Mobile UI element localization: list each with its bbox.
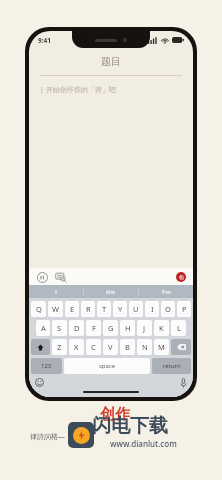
button[interactable]: A: [36, 320, 50, 336]
staticText: C: [91, 342, 96, 352]
button[interactable]: T: [97, 301, 111, 317]
button[interactable]: return: [152, 358, 191, 374]
staticText: 题目: [101, 55, 121, 68]
button[interactable]: the: [84, 285, 138, 298]
button[interactable]: O: [161, 301, 175, 317]
button[interactable]: K: [154, 320, 169, 336]
staticText: 123: [41, 362, 52, 370]
staticText: I: [55, 288, 58, 296]
staticText: S: [57, 323, 62, 333]
staticText: the: [106, 288, 116, 296]
staticText: A: [41, 323, 46, 333]
button[interactable]: U: [129, 301, 143, 317]
staticText: X: [74, 342, 79, 352]
button[interactable]: Seal: [176, 272, 186, 282]
button[interactable]: J: [137, 320, 152, 336]
staticText: I'm: [162, 288, 171, 296]
button[interactable]: I: [29, 285, 83, 298]
staticText: www.dianlut.com: [110, 438, 177, 449]
staticText: H: [125, 323, 131, 333]
button[interactable]: Emoji: [35, 378, 44, 387]
button[interactable]: F: [86, 320, 101, 336]
staticText: D: [74, 323, 80, 333]
button[interactable]: Delete: [171, 339, 191, 355]
staticText: space: [99, 362, 116, 370]
staticText: E: [70, 304, 75, 314]
staticText: T: [102, 304, 107, 314]
staticText: M: [158, 342, 165, 352]
staticText: | 开始创作你的「诗」吧: [40, 85, 116, 95]
staticText: O: [165, 304, 171, 314]
staticText: V: [108, 342, 113, 352]
button[interactable]: Pinyin tool: [36, 271, 48, 283]
button[interactable]: N: [137, 339, 152, 355]
button[interactable]: X: [69, 339, 84, 355]
button[interactable]: C: [86, 339, 101, 355]
staticText: 创作: [100, 405, 130, 424]
button[interactable]: space: [64, 358, 150, 374]
button[interactable]: Dictation: [180, 378, 187, 388]
button[interactable]: P: [177, 301, 191, 317]
button[interactable]: E: [65, 301, 79, 317]
staticText: B: [125, 342, 130, 352]
staticText: 闪电下载: [92, 414, 168, 438]
button[interactable]: D: [69, 320, 84, 336]
button[interactable]: Z: [52, 339, 67, 355]
button[interactable]: Y: [113, 301, 127, 317]
staticText: N: [142, 342, 148, 352]
staticText: J: [143, 323, 146, 333]
staticText: U: [133, 304, 139, 314]
staticText: 律詩詞格—: [30, 432, 65, 442]
button[interactable]: 123: [31, 358, 62, 374]
button[interactable]: M: [154, 339, 169, 355]
button[interactable]: L: [171, 320, 186, 336]
button[interactable]: S: [52, 320, 67, 336]
staticText: F: [92, 323, 96, 333]
button[interactable]: W: [48, 301, 63, 317]
staticText: 9:41: [38, 36, 51, 45]
button[interactable]: R: [81, 301, 95, 317]
staticText: P: [182, 304, 187, 314]
button[interactable]: Q: [31, 301, 46, 317]
button[interactable]: Shift: [31, 339, 50, 355]
button[interactable]: G: [103, 320, 118, 336]
staticText: R: [86, 304, 91, 314]
button[interactable]: Dictionary: [54, 270, 67, 283]
button[interactable]: I: [145, 301, 159, 317]
staticText: L: [177, 323, 181, 333]
staticText: Y: [118, 304, 123, 314]
button[interactable]: H: [120, 320, 135, 336]
button[interactable]: I'm: [139, 285, 193, 298]
staticText: 松: [179, 274, 184, 280]
staticText: Q: [36, 304, 42, 314]
staticText: Z: [57, 342, 62, 352]
staticText: W: [52, 304, 59, 314]
staticText: G: [108, 323, 114, 333]
button[interactable]: B: [120, 339, 135, 355]
staticText: K: [159, 323, 164, 333]
button[interactable]: V: [103, 339, 118, 355]
staticText: return: [163, 362, 181, 370]
staticText: I: [151, 304, 154, 314]
